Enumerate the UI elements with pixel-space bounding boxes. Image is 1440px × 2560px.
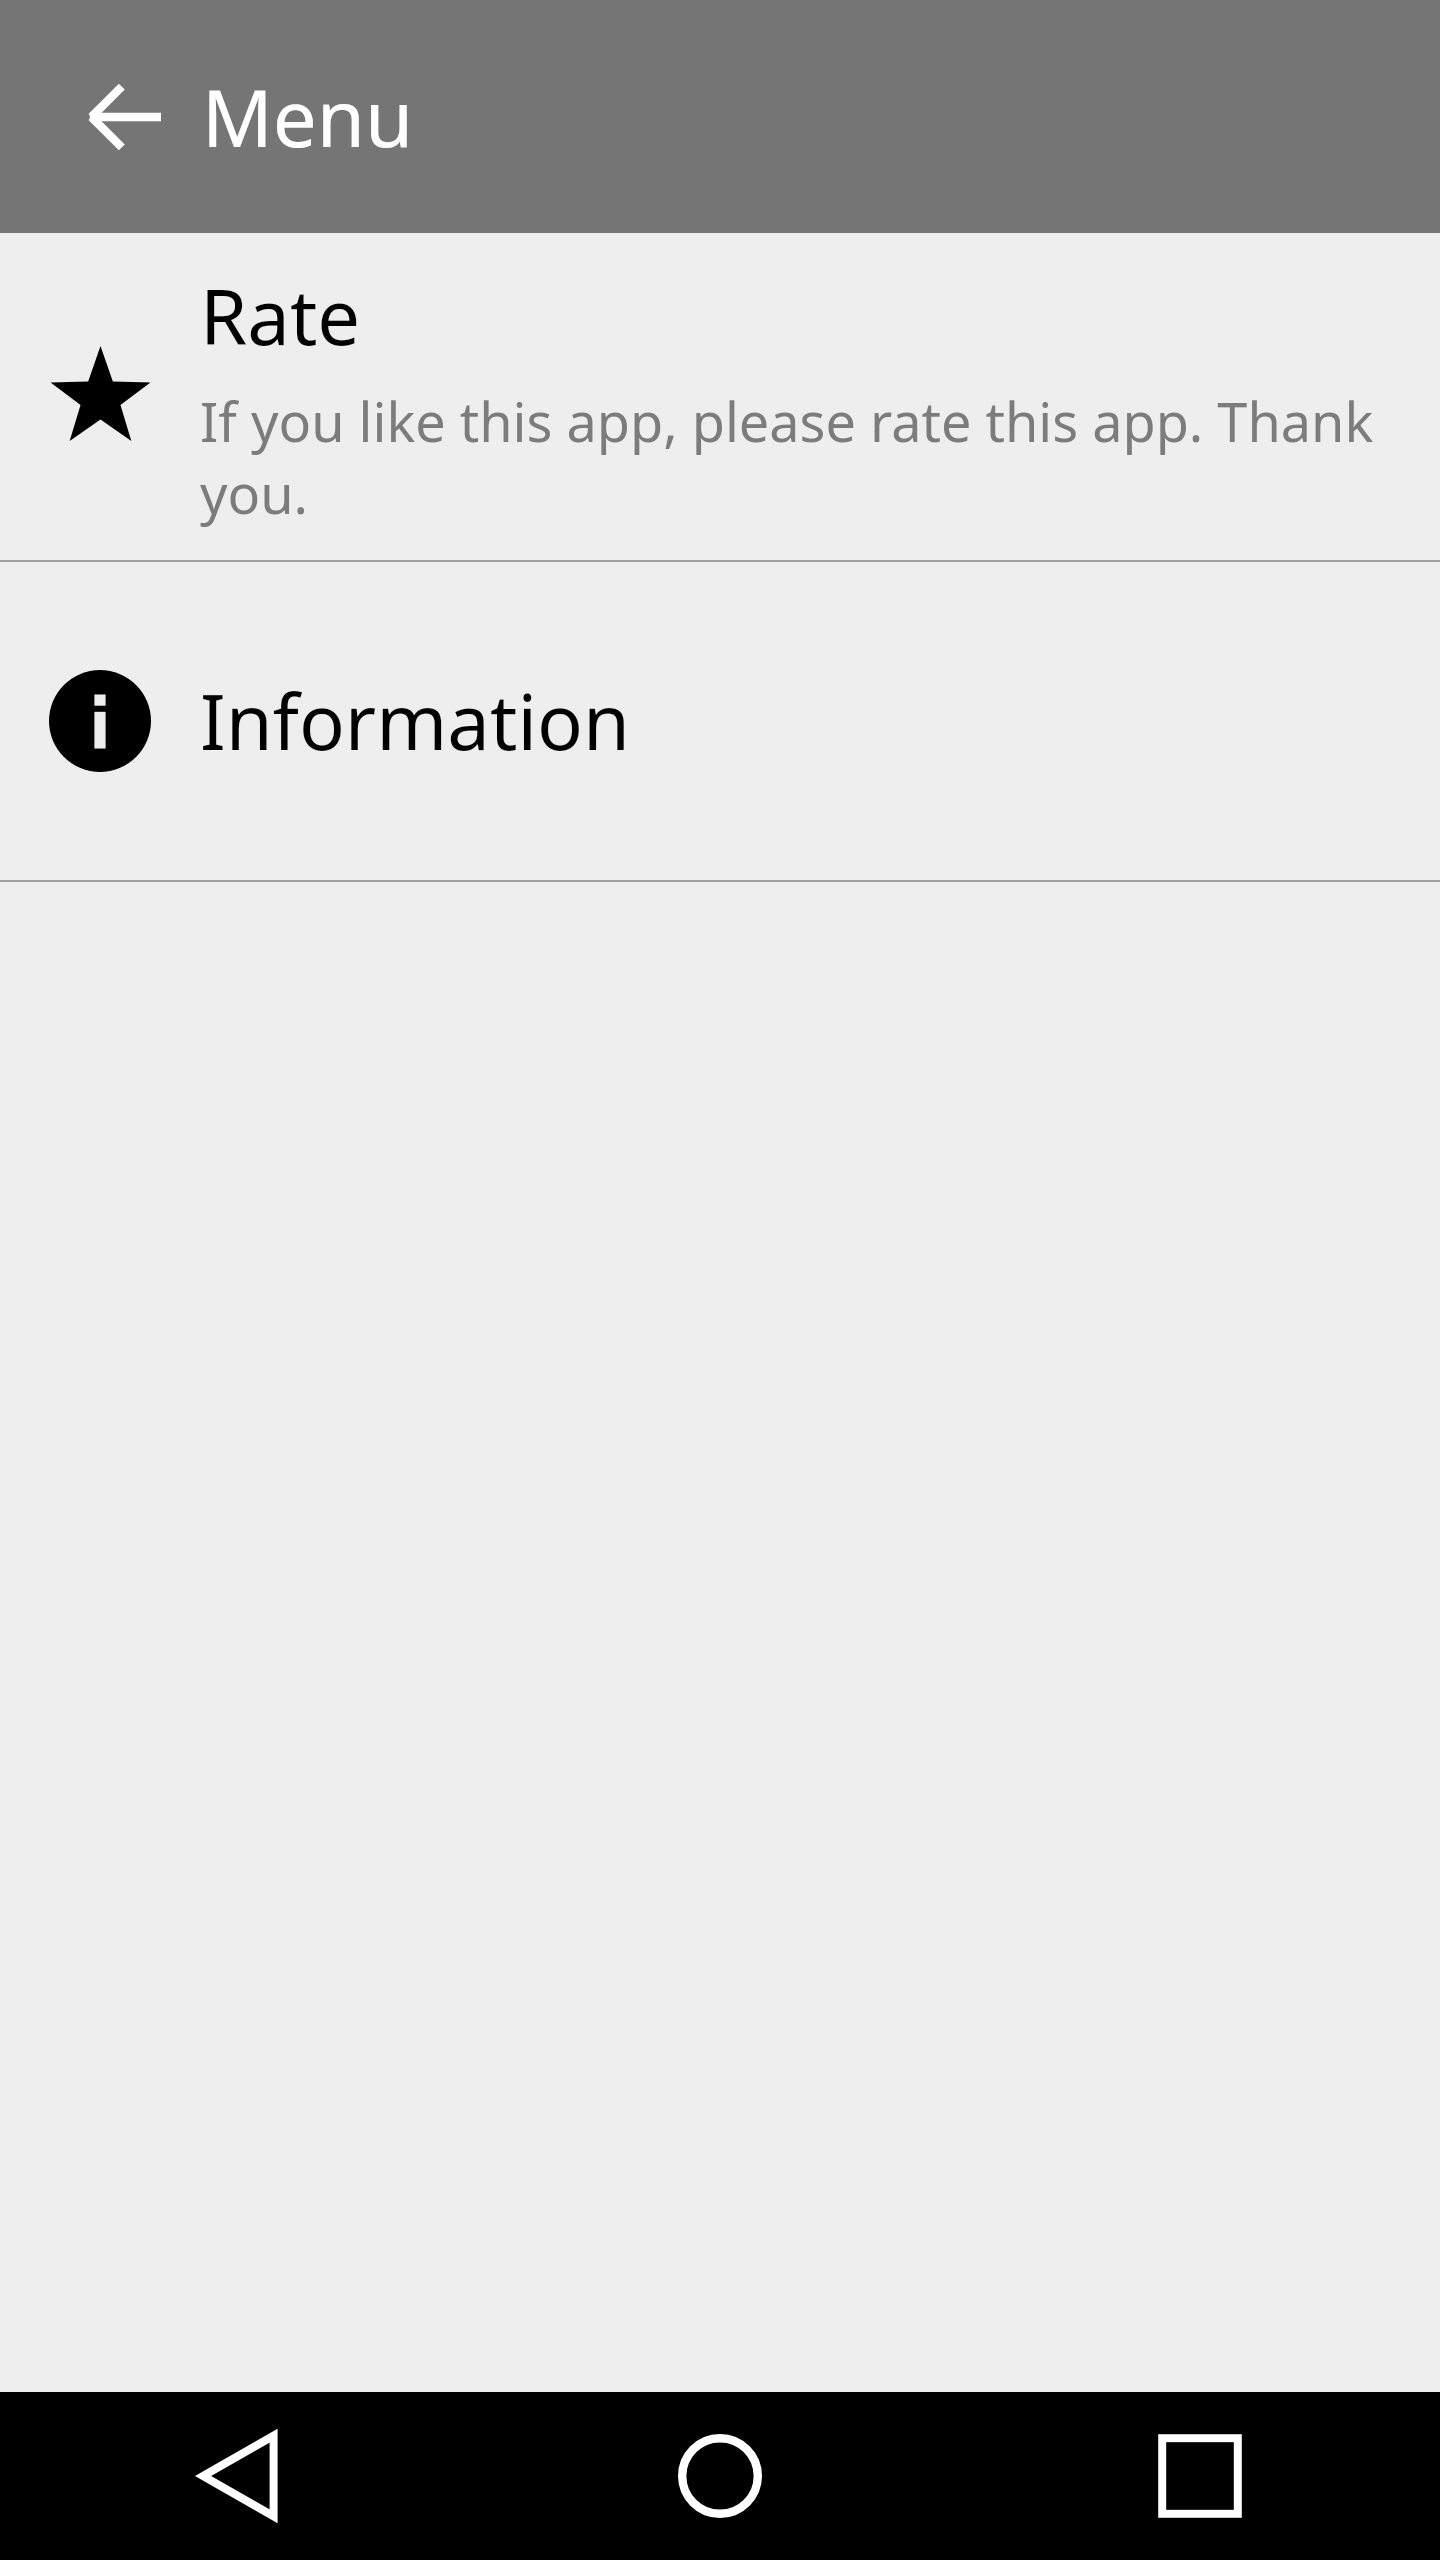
button[interactable]: Rate <box>0 233 1440 560</box>
button[interactable]: Home <box>480 2392 960 2560</box>
staticText: If you like this app, please rate this a… <box>200 384 1440 529</box>
staticText: Information <box>200 669 630 773</box>
button[interactable]: Recent apps <box>960 2392 1440 2560</box>
button[interactable]: Navigate up <box>70 62 180 172</box>
staticText: Menu <box>202 64 414 170</box>
button[interactable]: Information <box>0 562 1440 880</box>
staticText: Rate <box>200 264 361 368</box>
button[interactable]: Back <box>0 2392 480 2560</box>
